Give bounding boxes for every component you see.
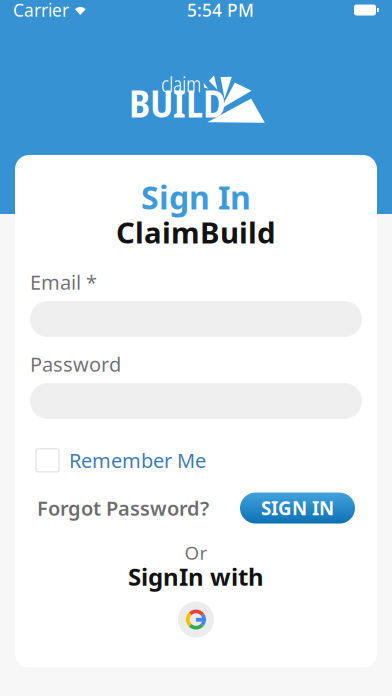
staticText: Forgot Password? bbox=[37, 495, 209, 521]
staticText: BUILD bbox=[129, 78, 226, 128]
button[interactable]: Forgot Password? bbox=[37, 495, 209, 521]
staticText: Remember Me bbox=[69, 447, 206, 474]
button[interactable]: Sign in with Google bbox=[178, 602, 214, 638]
staticText: Password bbox=[30, 351, 121, 377]
staticText: SIGN IN bbox=[261, 496, 334, 520]
staticText: SignIn with bbox=[128, 561, 264, 592]
staticText: claim bbox=[161, 69, 201, 99]
staticText: Carrier bbox=[13, 0, 69, 21]
button[interactable]: SIGN IN bbox=[240, 493, 355, 524]
staticText: ClaimBuild bbox=[116, 212, 276, 251]
staticText: Email * bbox=[30, 269, 97, 295]
button[interactable]: Remember Me bbox=[15, 447, 377, 474]
staticText: Or bbox=[184, 540, 207, 565]
staticText: Sign In bbox=[141, 176, 251, 218]
staticText: 5:54 PM bbox=[187, 0, 254, 21]
